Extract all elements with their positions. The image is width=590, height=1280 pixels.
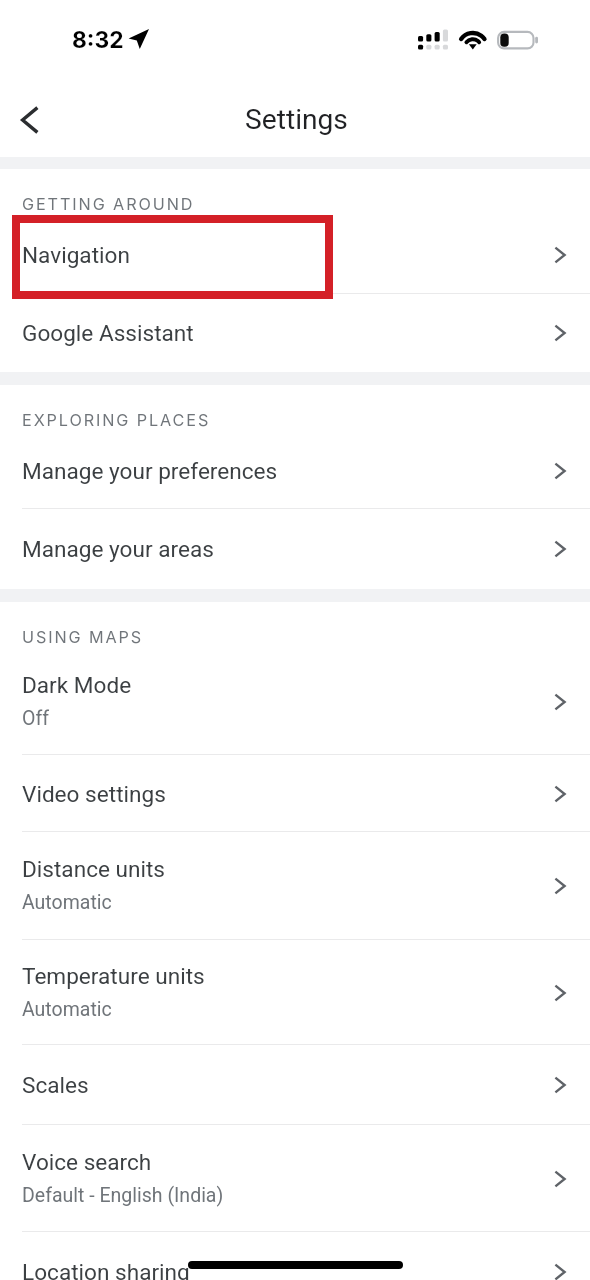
staticText: Distance units (22, 856, 166, 882)
button[interactable]: Google Assistant (0, 294, 590, 372)
staticText: Temperature units (22, 963, 205, 989)
staticText: Scales (22, 1072, 89, 1098)
staticText: Manage your preferences (22, 458, 278, 484)
button[interactable]: Navigation (0, 216, 590, 294)
button[interactable]: Temperature units (0, 940, 590, 1045)
button[interactable]: Manage your areas (0, 509, 590, 589)
staticText: 8:32 (72, 26, 124, 54)
button[interactable]: Dark Mode (0, 649, 590, 755)
staticText: Manage your areas (22, 536, 214, 562)
button[interactable]: Scales (0, 1045, 590, 1125)
staticText: Off (22, 707, 49, 730)
staticText: Automatic (22, 998, 112, 1021)
staticText: Navigation (22, 242, 130, 268)
staticText: Google Assistant (22, 320, 194, 346)
staticText: Settings (245, 103, 348, 136)
button[interactable]: Distance units (0, 832, 590, 940)
staticText: EXPLORING PLACES (22, 410, 211, 430)
staticText: GETTING AROUND (22, 194, 195, 214)
staticText: Default - English (India) (22, 1184, 224, 1207)
staticText: Automatic (22, 891, 112, 914)
staticText: Voice search (22, 1149, 152, 1175)
staticText: USING MAPS (22, 627, 144, 647)
button[interactable]: Voice search (0, 1125, 590, 1232)
staticText: Location sharing (22, 1259, 190, 1280)
button[interactable]: Manage your preferences (0, 432, 590, 509)
button[interactable]: Back (8, 98, 52, 142)
staticText: Dark Mode (22, 672, 132, 698)
staticText: Video settings (22, 781, 166, 807)
button[interactable]: Video settings (0, 755, 590, 832)
button[interactable]: Location sharing (0, 1232, 590, 1280)
